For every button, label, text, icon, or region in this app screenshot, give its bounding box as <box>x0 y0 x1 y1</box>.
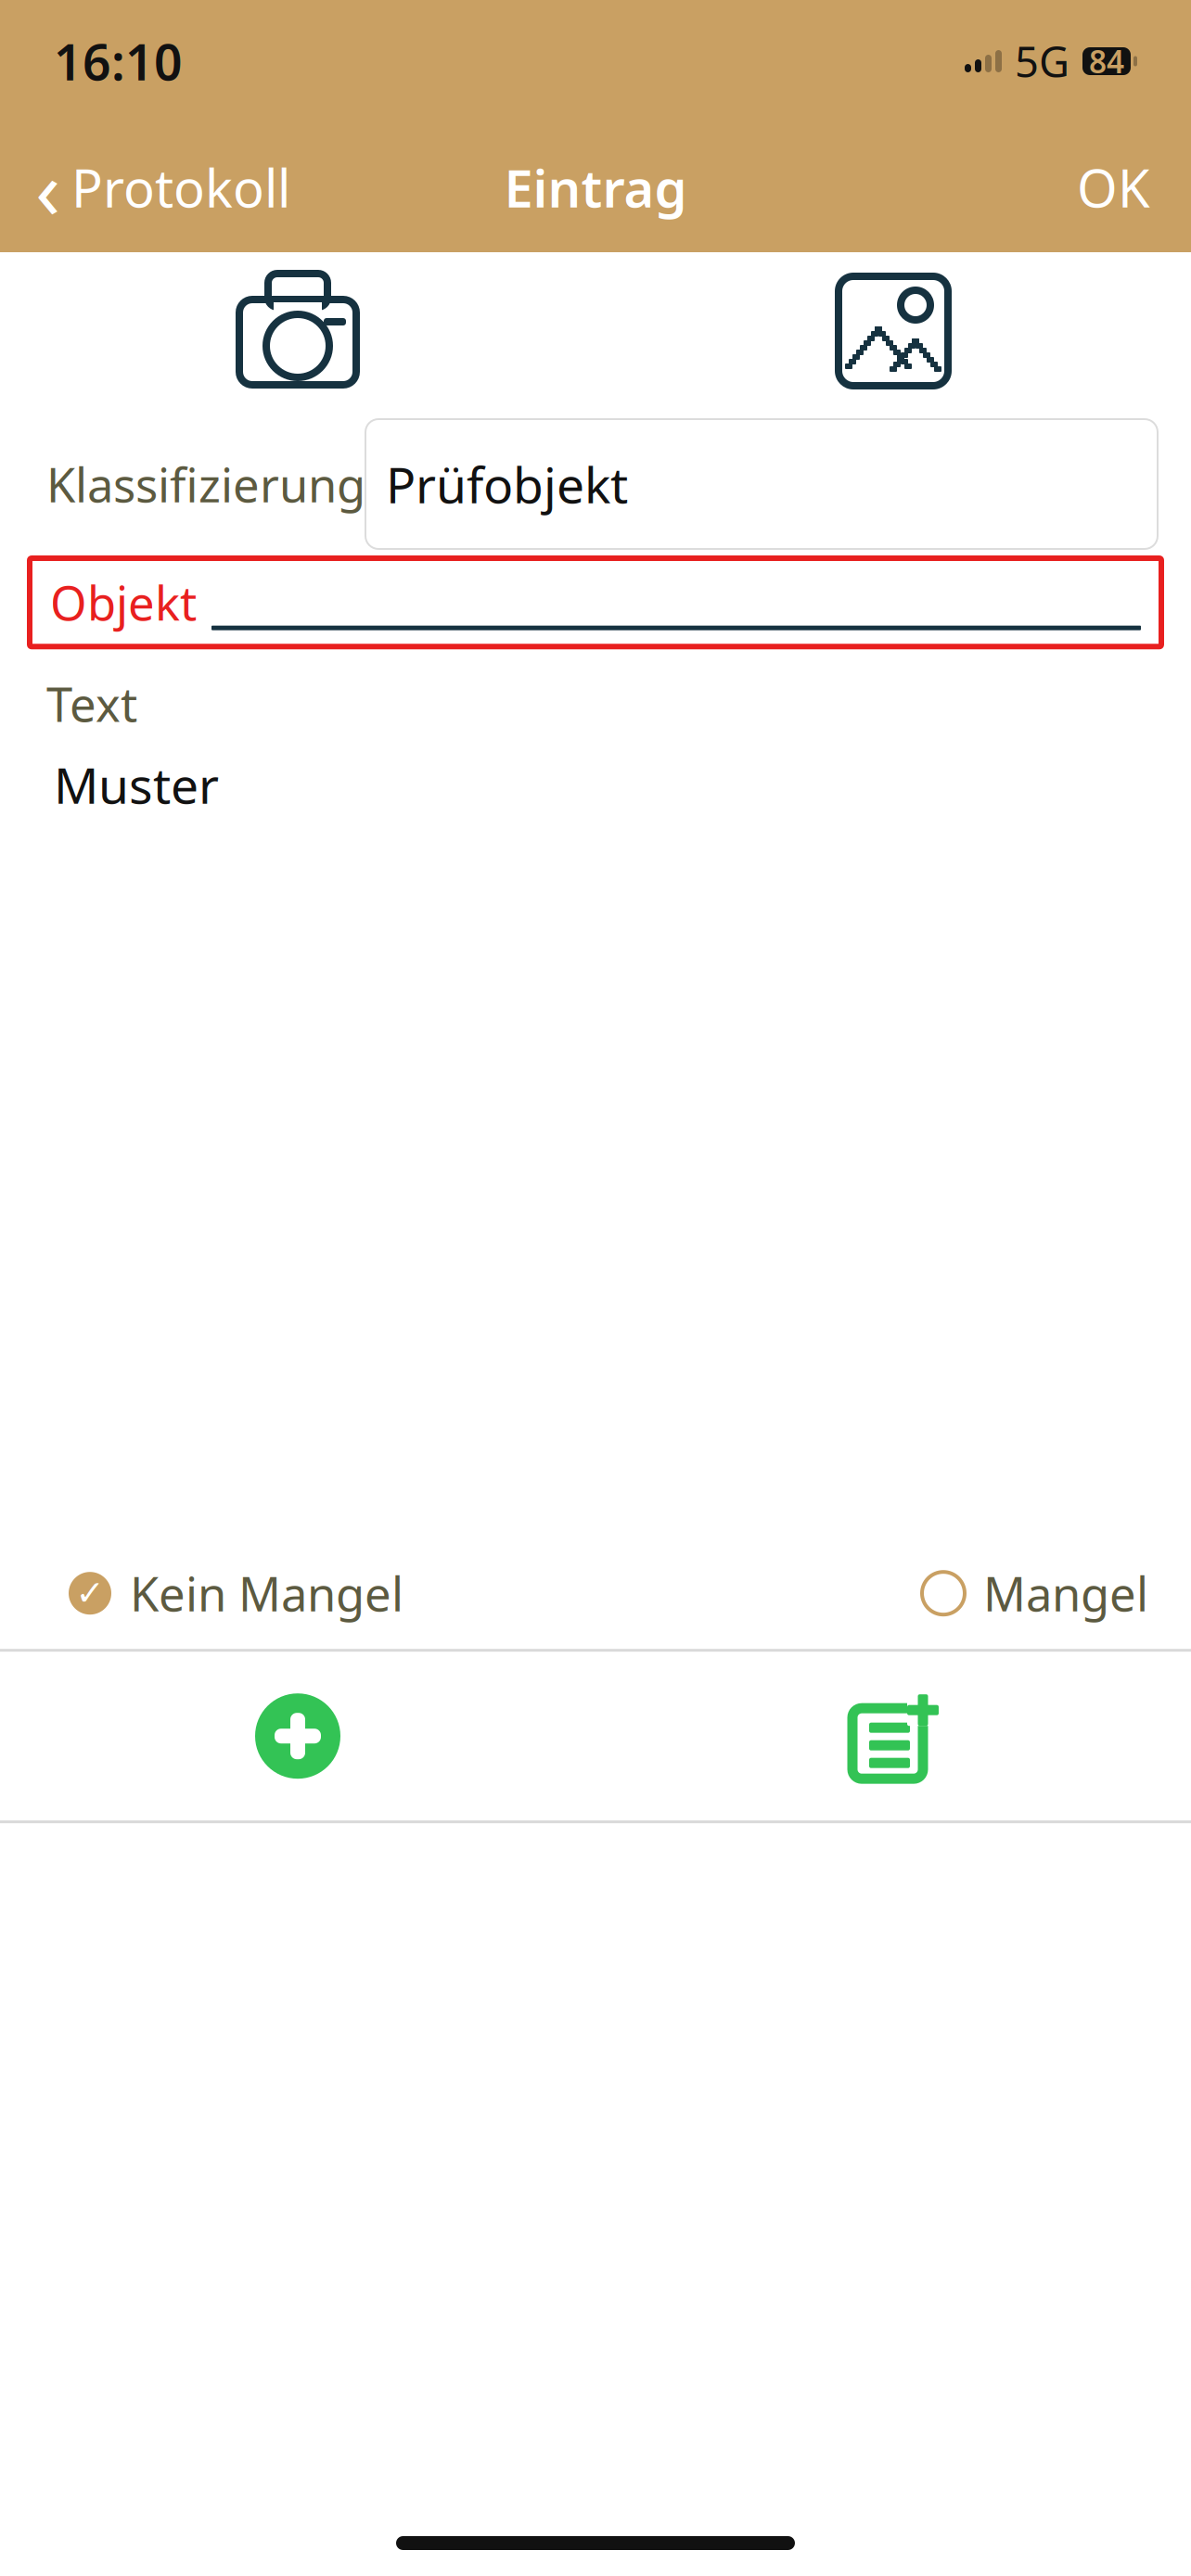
button[interactable]: ✓ <box>69 1553 403 1634</box>
button[interactable]: Foto aufnehmen <box>0 257 595 405</box>
staticText: OK <box>1077 153 1150 222</box>
staticText: Text <box>46 673 137 735</box>
button[interactable]: Prüfobjekt <box>365 419 1158 549</box>
staticText: Objekt <box>50 571 197 634</box>
button[interactable]: Neue Notiz <box>595 1653 1191 1820</box>
staticText: 16:10 <box>54 28 183 94</box>
staticText: Muster <box>54 752 219 817</box>
staticText: ✓ <box>76 1574 104 1613</box>
button[interactable]: OK <box>1057 144 1171 231</box>
staticText: Kein Mangel <box>130 1562 403 1625</box>
staticText: Klassifizierung <box>46 453 365 515</box>
staticText: 84 <box>1089 41 1124 82</box>
staticText: 5G <box>1015 33 1069 89</box>
button[interactable]: Mangel <box>922 1553 1148 1634</box>
button[interactable]: Foto auswählen <box>595 257 1191 405</box>
button[interactable]: Objekt <box>30 558 1161 647</box>
staticText: Mangel <box>983 1562 1148 1625</box>
staticText: Eintrag <box>504 153 687 222</box>
button[interactable]: Muster <box>0 744 1191 825</box>
staticText: ‹ <box>35 133 60 242</box>
button[interactable]: ‹ <box>20 129 305 245</box>
staticText: Protokoll <box>71 153 290 222</box>
staticText: Prüfobjekt <box>386 451 628 517</box>
button[interactable]: Eintrag hinzufügen <box>0 1653 595 1820</box>
